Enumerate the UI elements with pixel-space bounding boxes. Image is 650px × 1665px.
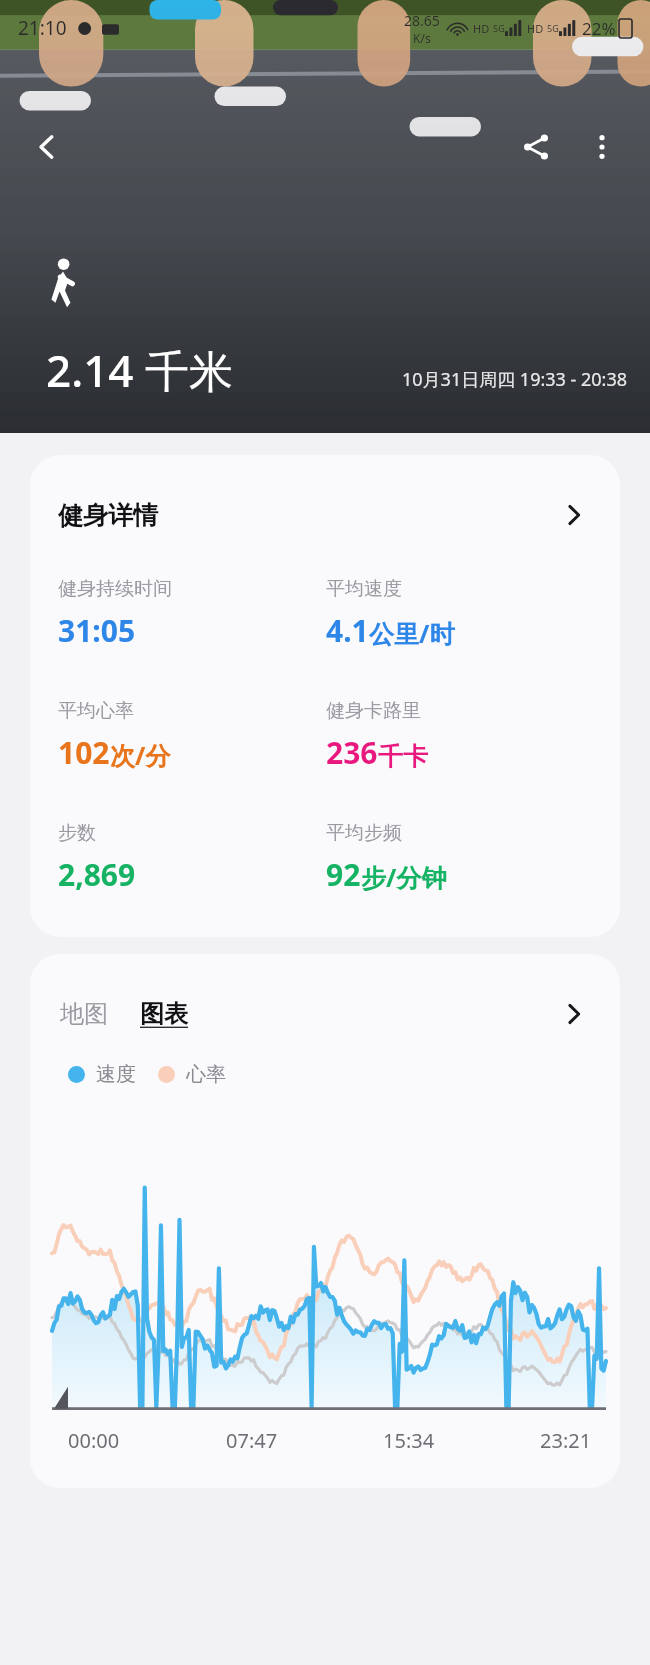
- staticText: 22%: [582, 17, 616, 40]
- button[interactable]: 健身详情: [30, 455, 620, 937]
- button[interactable]: More options: [576, 121, 628, 173]
- button[interactable]: Open chart: [554, 994, 594, 1034]
- staticText: 心率: [186, 1062, 226, 1087]
- staticText: 健身卡路里: [326, 699, 421, 723]
- staticText: 图表: [140, 999, 188, 1029]
- staticText: 28.65: [404, 11, 440, 30]
- staticText: 4.1: [326, 610, 369, 651]
- button[interactable]: 地图: [58, 995, 110, 1033]
- staticText: 速度: [96, 1062, 136, 1087]
- staticText: 平均心率: [58, 699, 134, 723]
- staticText: 10月31日周四 19:33 - 20:38: [402, 367, 628, 392]
- staticText: 102: [58, 732, 110, 773]
- staticText: 15:34: [383, 1427, 435, 1454]
- staticText: 健身详情: [58, 500, 158, 531]
- staticText: HD: [473, 21, 490, 36]
- staticText: 2,869: [58, 854, 136, 895]
- staticText: 次/分: [110, 738, 171, 772]
- staticText: 00:00: [68, 1427, 120, 1454]
- staticText: 步数: [58, 821, 96, 845]
- staticText: 07:47: [226, 1427, 278, 1454]
- staticText: 31:05: [58, 610, 136, 651]
- staticText: K/s: [413, 30, 431, 46]
- staticText: 2.14 千米: [46, 340, 233, 400]
- staticText: 236: [326, 732, 378, 773]
- staticText: 5G: [547, 22, 559, 34]
- staticText: 步/分钟: [361, 860, 447, 894]
- staticText: 21:10: [18, 15, 67, 41]
- staticText: 平均速度: [326, 577, 402, 601]
- staticText: 公里/时: [369, 616, 455, 650]
- button[interactable]: 图表: [138, 995, 190, 1033]
- staticText: HD: [527, 21, 544, 36]
- staticText: 92: [326, 854, 361, 895]
- staticText: 23:21: [540, 1427, 592, 1454]
- staticText: 平均步频: [326, 821, 402, 845]
- staticText: 地图: [60, 999, 108, 1029]
- staticText: 5G: [493, 22, 505, 34]
- button[interactable]: Back: [22, 122, 72, 172]
- staticText: 千卡: [378, 741, 428, 772]
- staticText: 健身持续时间: [58, 577, 172, 601]
- button[interactable]: Share: [510, 121, 562, 173]
